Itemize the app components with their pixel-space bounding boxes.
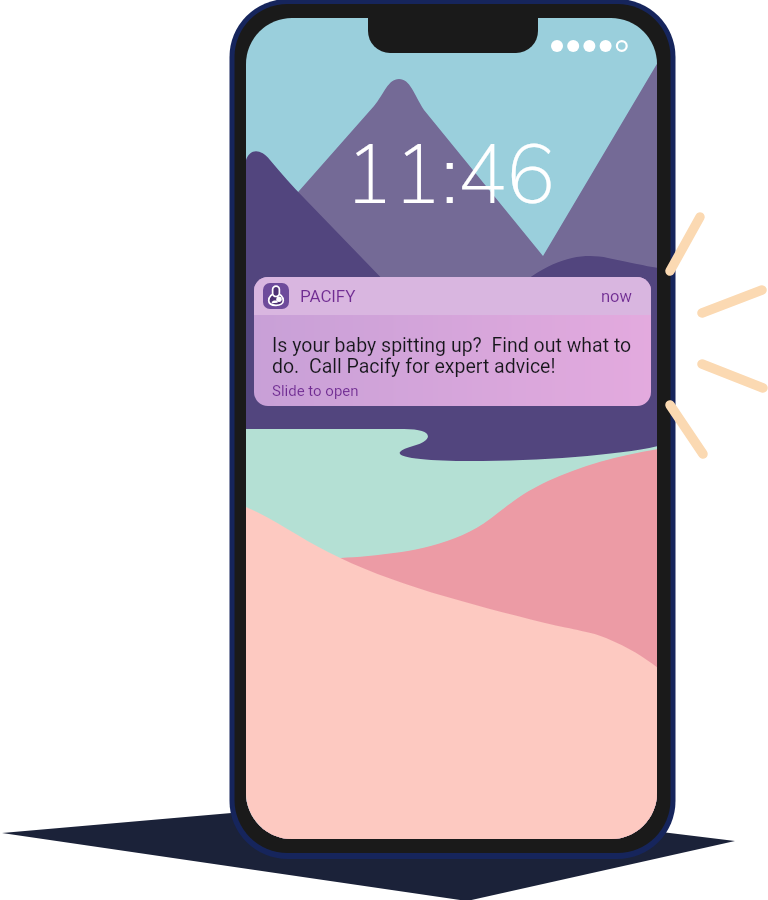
staticText: 11:46 bbox=[344, 119, 555, 232]
staticText: PACIFY bbox=[300, 286, 356, 306]
staticText: Slide to open bbox=[272, 382, 359, 400]
staticText: now bbox=[601, 287, 632, 306]
button[interactable]: Pacify app icon bbox=[254, 277, 651, 406]
other: Pacify app icon bbox=[263, 283, 289, 309]
staticText: Is your baby spitting up? Find out what … bbox=[272, 334, 651, 377]
